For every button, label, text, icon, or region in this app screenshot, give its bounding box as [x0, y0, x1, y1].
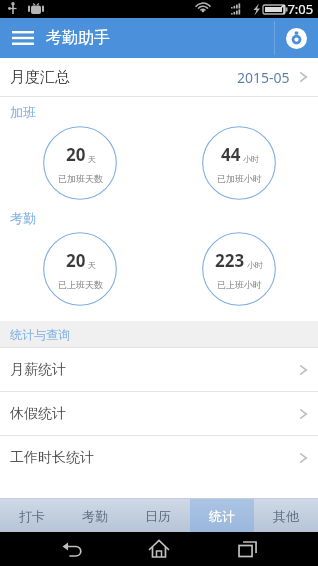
button[interactable]: 20: [43, 232, 117, 306]
staticText: 已上班天数: [58, 279, 103, 290]
button[interactable]: 休假统计: [0, 392, 318, 435]
button[interactable]: 月度汇总: [0, 58, 318, 96]
staticText: 20: [66, 249, 86, 272]
staticText: 统计与查询: [10, 327, 70, 342]
button[interactable]: 月薪统计: [0, 348, 318, 391]
button[interactable]: 统计: [190, 499, 254, 532]
staticText: 统计: [209, 508, 235, 524]
staticText: 小时: [243, 154, 259, 164]
staticText: 223: [215, 249, 245, 272]
button[interactable]: 223: [202, 232, 276, 306]
staticText: 2015-05: [237, 68, 290, 87]
button[interactable]: 其他: [254, 499, 318, 532]
staticText: 月薪统计: [10, 361, 66, 379]
button[interactable]: Menu: [0, 18, 46, 58]
staticText: 打卡: [19, 508, 45, 524]
button[interactable]: 日历: [126, 499, 190, 532]
staticText: 20: [66, 143, 86, 166]
staticText: 考勤: [82, 508, 108, 524]
staticText: 休假统计: [10, 405, 66, 423]
staticText: 已加班小时: [217, 173, 262, 184]
staticText: 日历: [145, 508, 171, 524]
staticText: 月度汇总: [10, 68, 70, 87]
staticText: 天: [88, 260, 96, 270]
button[interactable]: 打卡: [0, 499, 63, 532]
button[interactable]: 44: [202, 126, 276, 200]
staticText: 已加班天数: [58, 173, 103, 184]
button[interactable]: 工作时长统计: [0, 436, 318, 479]
staticText: 考勤助手: [46, 28, 110, 48]
staticText: 加班: [10, 104, 36, 120]
staticText: 其他: [273, 508, 299, 524]
button[interactable]: Scan: [275, 18, 318, 58]
staticText: 17:05: [280, 0, 314, 18]
staticText: 44: [221, 143, 241, 166]
staticText: 考勤: [10, 210, 36, 226]
staticText: 工作时长统计: [10, 449, 94, 467]
staticText: 天: [88, 154, 96, 164]
staticText: 小时: [247, 260, 263, 270]
button[interactable]: 20: [43, 126, 117, 200]
staticText: 已上班小时: [217, 279, 262, 290]
button[interactable]: 考勤: [63, 499, 126, 532]
